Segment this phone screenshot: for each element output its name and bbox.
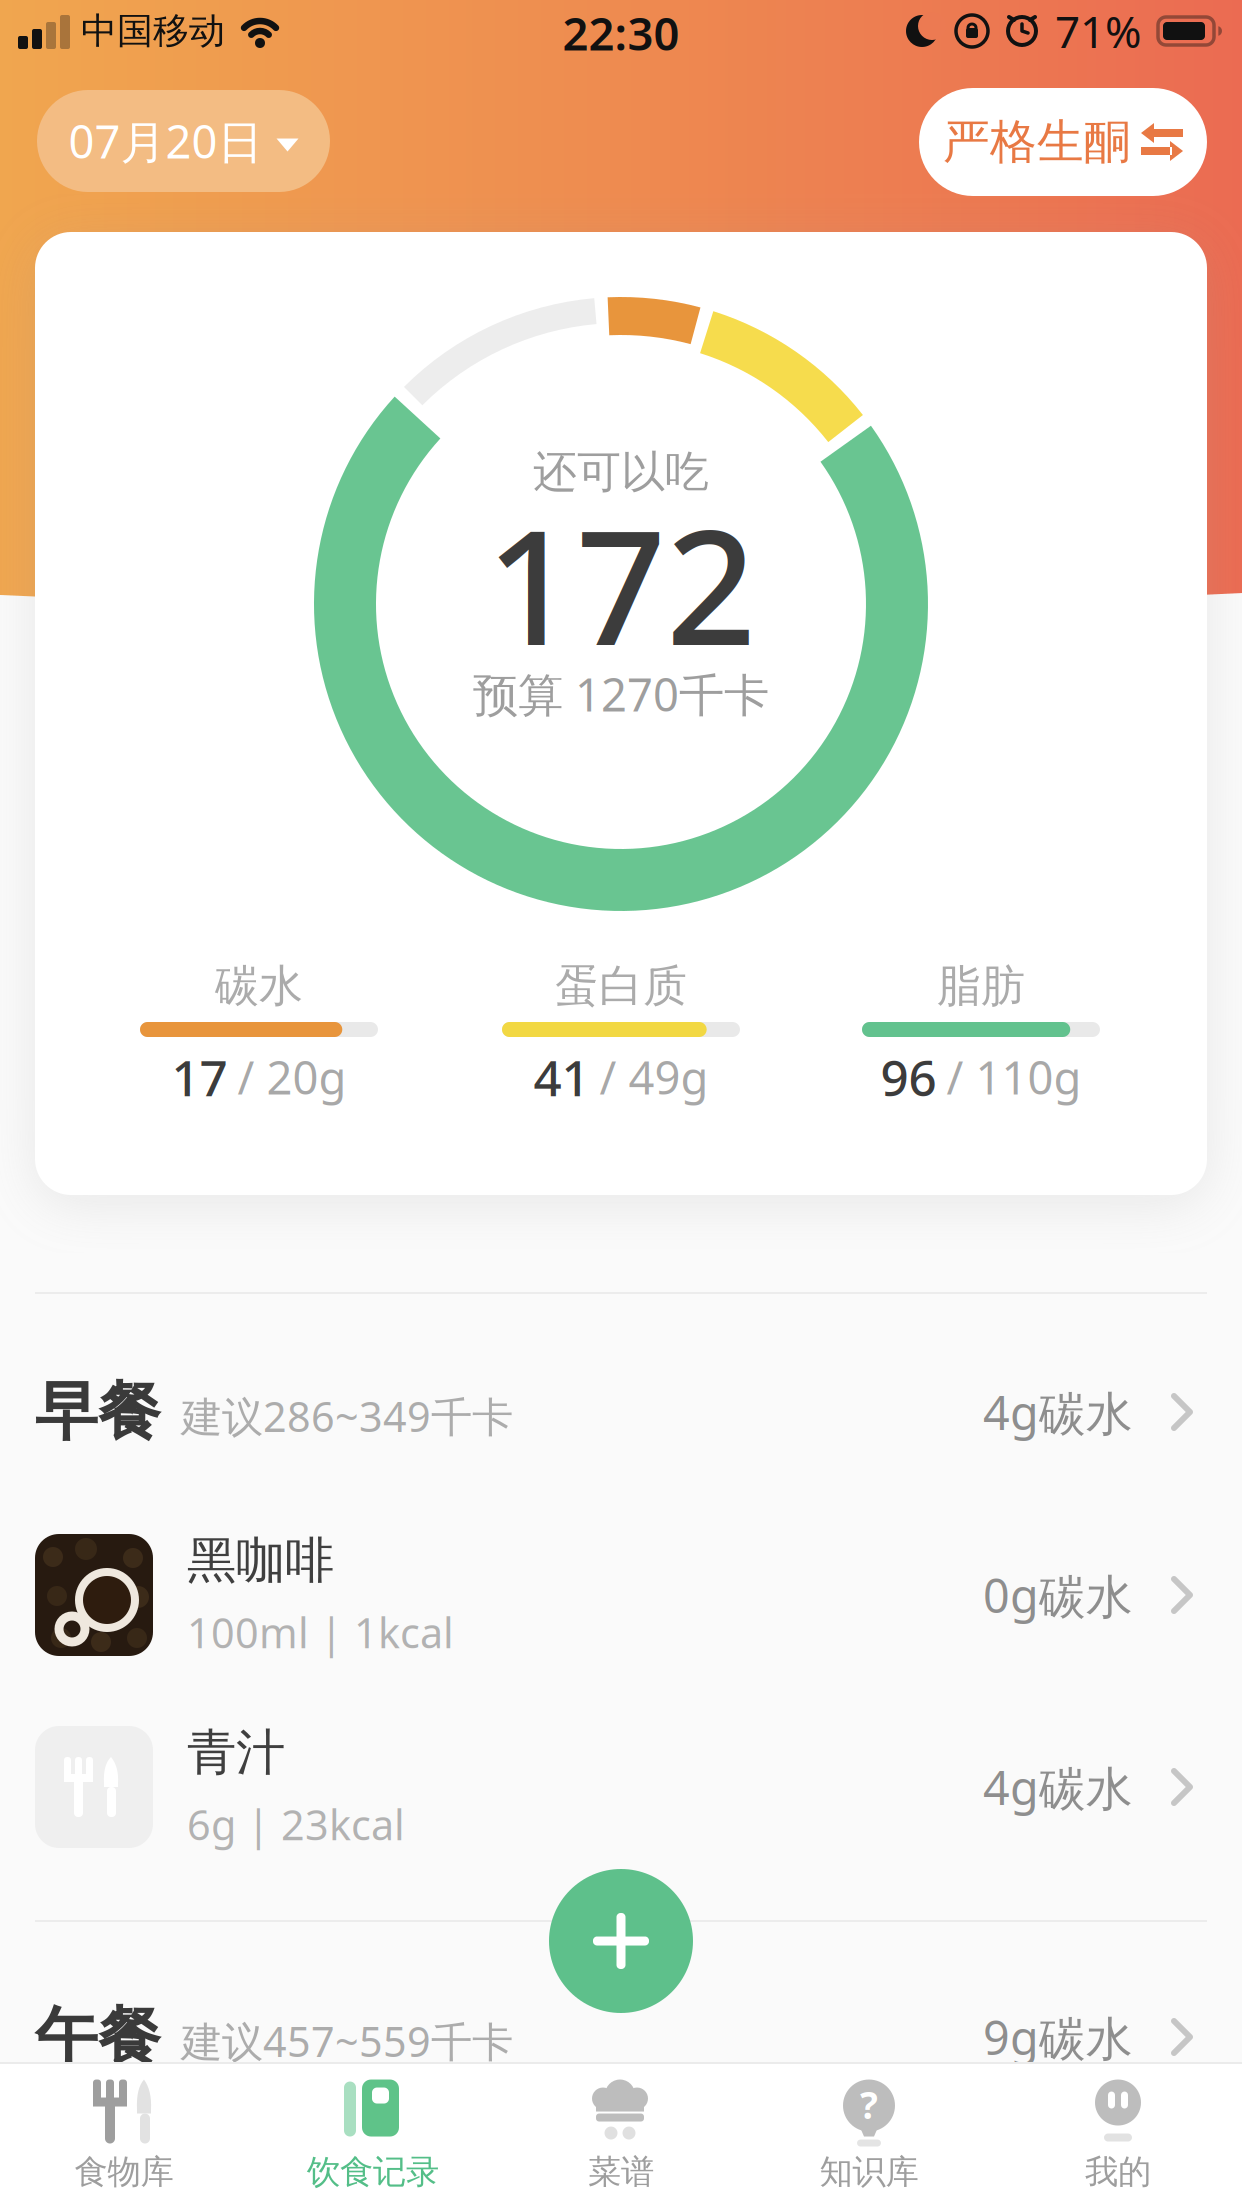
staticText: / 110g <box>946 1047 1081 1107</box>
button[interactable]: 严格生酮 <box>919 88 1207 196</box>
button[interactable]: 早餐 <box>35 1367 1207 1457</box>
staticText: 41 <box>533 1044 589 1110</box>
staticText: 碳水 <box>215 959 303 1013</box>
staticText: 食物库 <box>74 2151 173 2192</box>
staticText: 07月20日 <box>68 111 262 171</box>
button[interactable]: 饮食记录 <box>253 2066 493 2206</box>
staticText: 建议457~559千卡 <box>181 2014 513 2068</box>
staticText: 17 <box>171 1044 227 1110</box>
button[interactable]: 黑咖啡 <box>35 1534 1207 1656</box>
staticText: 我的 <box>1085 2151 1151 2192</box>
staticText: 71% <box>1055 2 1142 60</box>
staticText: 还可以吃 <box>533 445 709 499</box>
staticText: 9g碳水 <box>983 2006 1133 2068</box>
staticText: ? <box>860 2080 878 2129</box>
button[interactable]: 青汁 <box>35 1726 1207 1848</box>
button[interactable]: 我的 <box>998 2066 1238 2206</box>
staticText: 早餐 <box>35 1373 161 1450</box>
staticText: 中国移动 <box>81 9 225 53</box>
button[interactable]: 菜谱 <box>501 2066 741 2206</box>
staticText: / 20g <box>237 1047 346 1107</box>
staticText: 6g | 23kcal <box>187 1797 405 1852</box>
staticText: 严格生酮 <box>943 113 1131 171</box>
staticText: 4g碳水 <box>983 1756 1133 1818</box>
staticText: 知识库 <box>819 2151 918 2192</box>
staticText: 建议286~349千卡 <box>181 1389 513 1443</box>
button[interactable]: 07月20日 <box>37 90 330 192</box>
staticText: 4g碳水 <box>983 1381 1133 1443</box>
staticText: 饮食记录 <box>307 2151 439 2192</box>
staticText: 100ml | 1kcal <box>187 1605 454 1660</box>
staticText: 午餐 <box>35 1998 161 2075</box>
staticText: 96 <box>880 1044 936 1110</box>
button[interactable]: ? <box>749 2066 989 2206</box>
staticText: 菜谱 <box>588 2151 654 2192</box>
staticText: 22:30 <box>562 3 679 63</box>
staticText: / 49g <box>599 1047 708 1107</box>
staticText: 预算 1270千卡 <box>473 664 769 724</box>
button[interactable]: 食物库 <box>4 2066 244 2206</box>
button[interactable]: 添加食物 <box>549 1869 693 2013</box>
staticText: 172 <box>486 479 756 688</box>
staticText: 0g碳水 <box>983 1564 1133 1626</box>
staticText: 脂肪 <box>937 959 1025 1013</box>
staticText: 蛋白质 <box>555 959 687 1013</box>
staticText: 黑咖啡 <box>187 1530 334 1591</box>
staticText: 青汁 <box>187 1722 285 1783</box>
button[interactable]: 午餐 <box>35 1992 1207 2082</box>
